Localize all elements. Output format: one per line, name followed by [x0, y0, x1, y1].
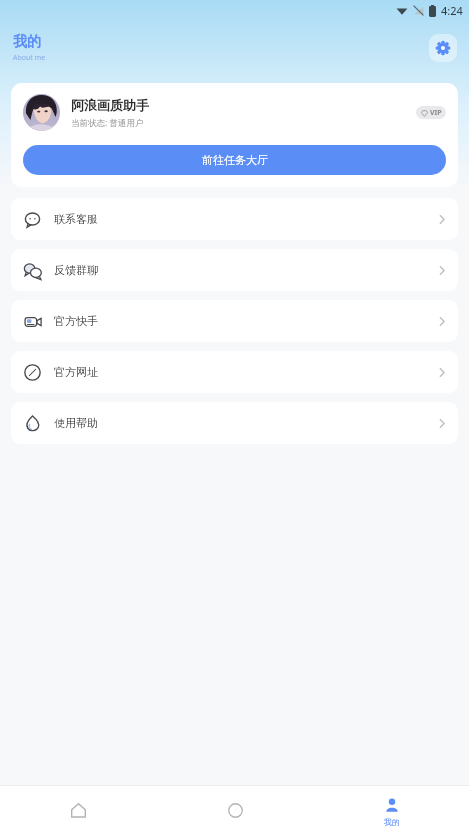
button[interactable]: Profile [313, 786, 469, 835]
button[interactable]: 官方快手 [11, 300, 458, 342]
staticText: 反馈群聊 [54, 263, 98, 277]
button[interactable]: 使用帮助 [11, 402, 458, 444]
staticText: VIP [430, 108, 442, 118]
staticText: 我的 [384, 817, 400, 827]
button[interactable]: 官方网址 [11, 351, 458, 393]
staticText: 联系客服 [54, 212, 98, 226]
staticText: 官方网址 [54, 365, 98, 379]
button[interactable]: Settings [429, 34, 457, 62]
staticText: 当前状态: 普通用户 [71, 117, 144, 129]
staticText: 我的 [13, 33, 41, 51]
staticText: 前往任务大厅 [202, 153, 268, 167]
button[interactable]: VIP [416, 106, 446, 119]
staticText: About me [13, 53, 46, 63]
staticText: 使用帮助 [54, 416, 98, 430]
button[interactable]: 前往任务大厅 [23, 145, 446, 175]
button[interactable]: Explore [157, 786, 313, 835]
staticText: 4:24 [441, 3, 463, 18]
staticText: 阿浪画质助手 [71, 97, 149, 113]
button[interactable]: 阿浪画质助手 [23, 94, 446, 131]
staticText: 官方快手 [54, 314, 98, 328]
button[interactable]: 联系客服 [11, 198, 458, 240]
button[interactable]: Home [0, 786, 157, 835]
button[interactable]: 反馈群聊 [11, 249, 458, 291]
